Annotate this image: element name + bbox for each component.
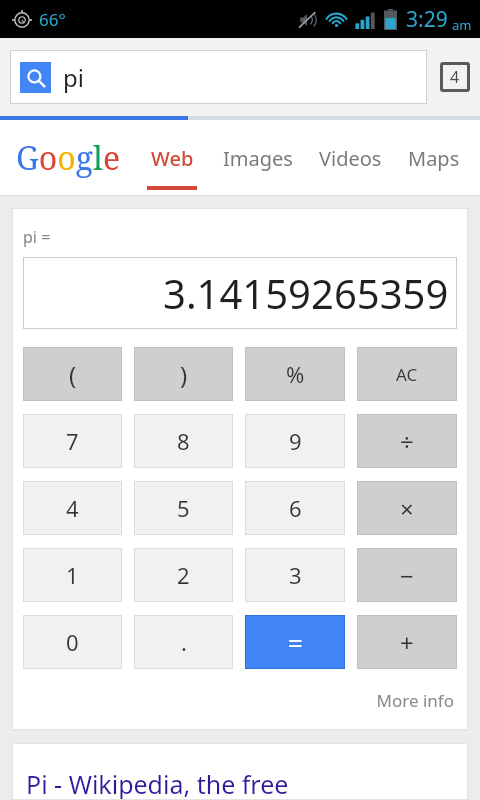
button[interactable]: )	[134, 347, 233, 401]
staticText: ×	[400, 492, 414, 525]
staticText: .	[181, 627, 187, 657]
staticText: 6	[289, 493, 302, 523]
button[interactable]: 6	[245, 481, 345, 535]
staticText: −	[400, 559, 414, 592]
button[interactable]: Videos	[319, 120, 382, 196]
staticText: 7	[66, 426, 79, 456]
staticText: =	[288, 625, 303, 660]
button[interactable]: ÷	[357, 414, 457, 468]
button[interactable]: 4	[23, 481, 122, 535]
button[interactable]: 5	[134, 481, 233, 535]
staticText: )	[180, 358, 188, 391]
button[interactable]: Images	[223, 120, 293, 196]
button[interactable]: Tabs, 4 open	[440, 62, 470, 92]
button[interactable]: 2	[134, 548, 233, 602]
staticText: 1	[66, 560, 79, 590]
staticText: 4	[66, 493, 79, 523]
button[interactable]: .	[134, 615, 233, 669]
button[interactable]: Web	[147, 120, 197, 196]
button[interactable]: 8	[134, 414, 233, 468]
staticText: 3:29	[406, 5, 448, 34]
staticText: 0	[66, 627, 79, 657]
button[interactable]: 7	[23, 414, 122, 468]
staticText: pi	[63, 61, 84, 94]
staticText: 66°	[39, 8, 66, 31]
button[interactable]: Pi - Wikipedia, the free	[12, 743, 468, 800]
button[interactable]: =	[245, 615, 345, 669]
staticText: Pi - Wikipedia, the free	[26, 767, 289, 800]
button[interactable]: −	[357, 548, 457, 602]
staticText: AC	[396, 363, 418, 386]
button[interactable]: ×	[357, 481, 457, 535]
staticText: 3	[289, 560, 302, 590]
staticText: am	[452, 16, 472, 34]
staticText: Web	[151, 145, 194, 172]
staticText: 8	[177, 426, 190, 456]
staticText: ÷	[400, 425, 414, 458]
button[interactable]: pi	[10, 50, 427, 104]
staticText: %	[286, 359, 305, 389]
button[interactable]: %	[245, 347, 345, 401]
button[interactable]: +	[357, 615, 457, 669]
button[interactable]: More info	[23, 689, 457, 712]
staticText: 5	[177, 493, 190, 523]
staticText: (	[69, 358, 77, 391]
button[interactable]: 3.14159265359	[23, 257, 457, 329]
button[interactable]: (	[23, 347, 122, 401]
button[interactable]: AC	[357, 347, 457, 401]
staticText: 2	[177, 560, 190, 590]
staticText: Maps	[408, 145, 460, 172]
button[interactable]: 1	[23, 548, 122, 602]
staticText: Videos	[319, 145, 382, 172]
button[interactable]: 0	[23, 615, 122, 669]
staticText: pi =	[23, 226, 454, 248]
staticText: Images	[223, 145, 293, 172]
staticText: 9	[289, 426, 302, 456]
button[interactable]: 9	[245, 414, 345, 468]
button[interactable]: Google	[16, 136, 121, 180]
staticText: +	[400, 626, 414, 659]
button[interactable]: Maps	[408, 120, 460, 196]
staticText: 3.14159265359	[163, 266, 449, 320]
staticText: 4	[450, 66, 460, 88]
button[interactable]: 3	[245, 548, 345, 602]
